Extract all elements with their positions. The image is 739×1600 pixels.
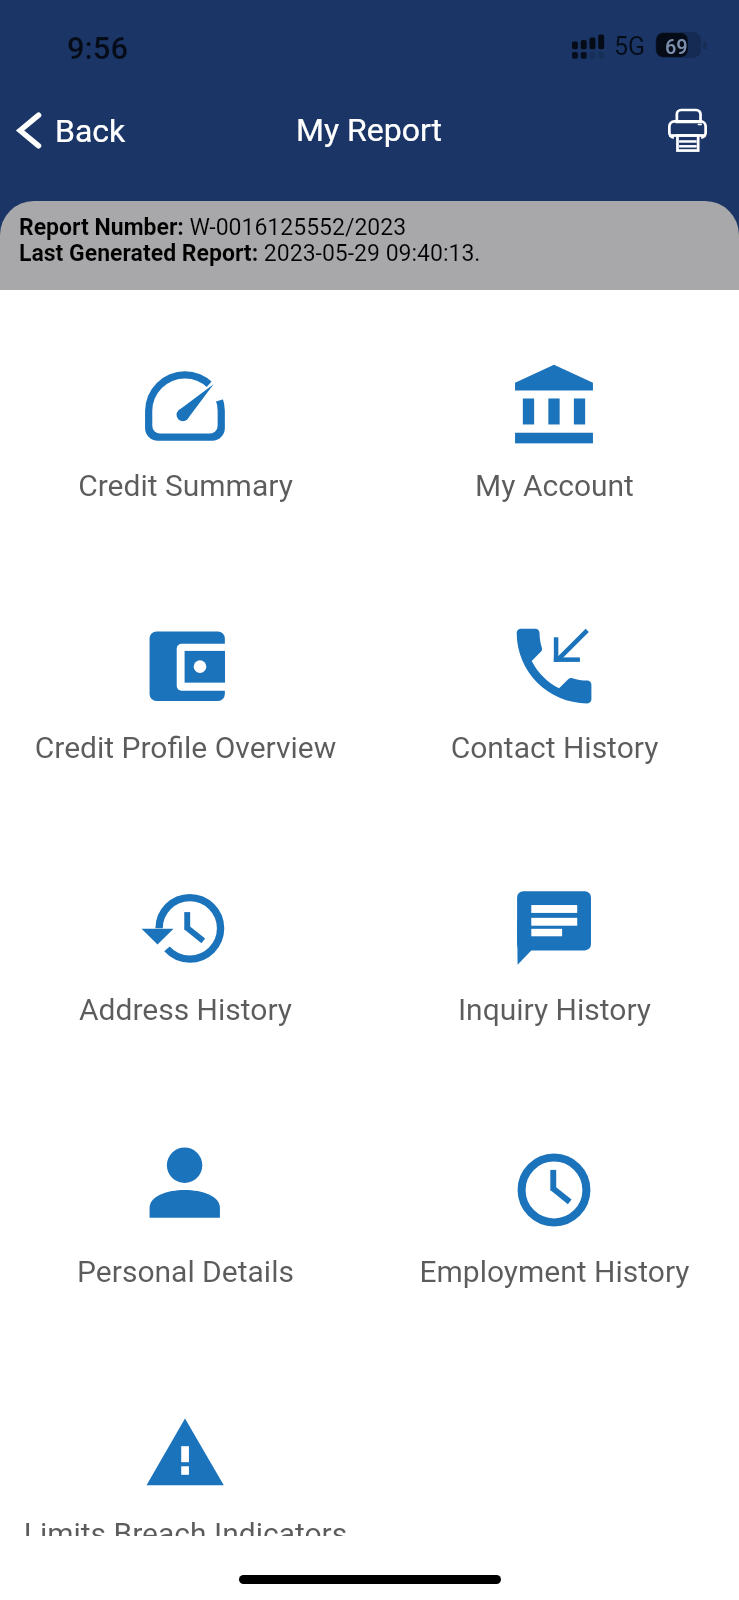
staticText: My Account [370,468,739,503]
button[interactable]: Print [659,102,716,159]
staticText: 69 [665,35,688,58]
button[interactable]: Inquiry History [370,838,739,1100]
button[interactable]: Employment History [370,1100,739,1362]
staticText: Limits Breach Indicators [1,1516,370,1536]
staticText: 5G [614,32,646,61]
staticText: My Report [296,111,443,149]
staticText: Credit Summary [1,468,370,503]
staticText: Employment History [370,1254,739,1289]
staticText: Personal Details [1,1254,370,1289]
button[interactable]: Credit Profile Overview [1,576,370,838]
staticText: Contact History [370,730,739,765]
staticText: Last Generated Report: 2023-05-29 09:40:… [19,240,481,267]
staticText: Address History [1,992,370,1027]
button[interactable]: Address History [1,838,370,1100]
staticText: Inquiry History [370,992,739,1027]
staticText: Back [55,112,126,150]
button[interactable]: Contact History [370,576,739,838]
staticText: Credit Profile Overview [1,730,370,765]
button[interactable]: Limits Breach Indicators [1,1362,370,1536]
staticText: Report Number: W-0016125552/2023 [19,214,407,241]
staticText: 9:56 [67,30,129,66]
button[interactable]: Personal Details [1,1100,370,1362]
button[interactable]: Back [8,102,126,159]
button[interactable]: Credit Summary [1,314,370,576]
button[interactable]: My Account [370,314,739,576]
